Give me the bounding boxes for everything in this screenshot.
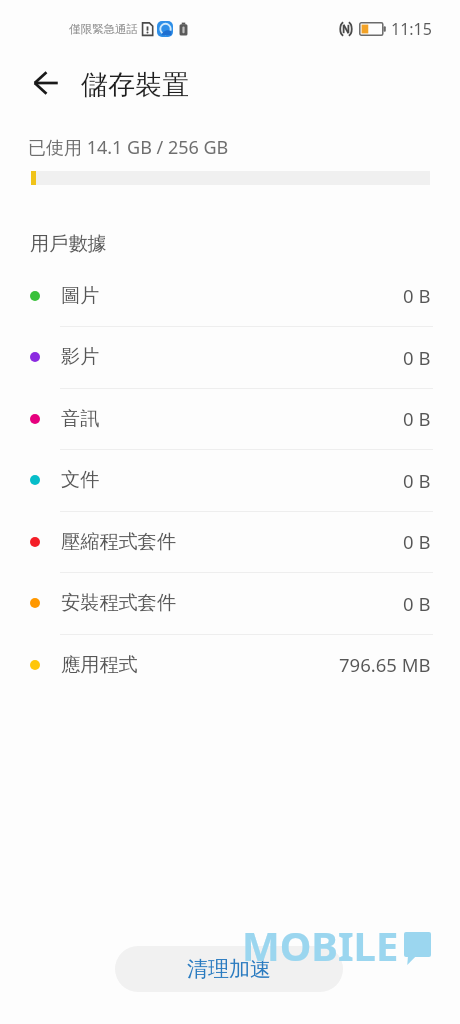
staticText: 0 B — [403, 529, 431, 554]
staticText: 0 B — [403, 468, 431, 493]
button[interactable]: 壓縮程式套件 — [0, 514, 460, 575]
staticText: 安裝程式套件 — [61, 591, 177, 615]
staticText: 壓縮程式套件 — [61, 530, 177, 554]
staticText: 0 B — [403, 406, 431, 431]
button[interactable]: 音訊 — [0, 391, 460, 452]
staticText: MOBILE — [242, 918, 399, 972]
staticText: 清理加速 — [187, 956, 271, 982]
button[interactable]: Back — [26, 63, 66, 103]
staticText: 用戶數據 — [30, 232, 107, 256]
button[interactable]: 文件 — [0, 452, 460, 514]
staticText: 僅限緊急通話 — [69, 22, 138, 36]
button[interactable]: 安裝程式套件 — [0, 575, 460, 637]
button[interactable]: 清理加速 — [115, 946, 343, 992]
staticText: 已使用 14.1 GB / 256 GB — [28, 135, 229, 160]
staticText: 0 B — [403, 345, 431, 370]
staticText: 796.65 MB — [339, 652, 431, 677]
button[interactable]: 應用程式 — [0, 637, 460, 698]
staticText: 0 B — [403, 283, 431, 308]
staticText: 0 B — [403, 591, 431, 616]
staticText: 應用程式 — [61, 653, 138, 677]
button[interactable]: 影片 — [0, 329, 460, 391]
staticText: 文件 — [61, 468, 100, 492]
staticText: 音訊 — [61, 407, 100, 431]
staticText: 11:15 — [391, 18, 432, 40]
staticText: 影片 — [61, 345, 100, 369]
staticText: 儲存裝置 — [81, 68, 189, 102]
button[interactable]: 圖片 — [0, 268, 460, 329]
staticText: 圖片 — [61, 284, 100, 308]
